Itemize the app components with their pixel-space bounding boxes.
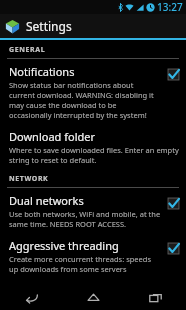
staticText: Show status bar notifications about curr… [9, 80, 161, 120]
button[interactable]: Toggle Dual networks [167, 197, 180, 210]
button[interactable]: Recents [124, 284, 186, 310]
staticText: Settings [26, 18, 72, 34]
staticText: Notifications [9, 64, 75, 79]
button[interactable]: Toggle Notifications [167, 68, 180, 81]
staticText: 13:27 [157, 0, 183, 14]
button[interactable]: Aggressive threading [0, 233, 186, 278]
button[interactable]: Toggle Aggressive threading [167, 242, 180, 255]
button[interactable]: Download folder [0, 124, 186, 169]
staticText: Aggressive threading [9, 238, 119, 253]
staticText: Dual networks [9, 193, 84, 208]
staticText: GENERAL [9, 45, 46, 55]
staticText: Where to save downloaded files. Enter an… [9, 145, 180, 165]
button[interactable]: Back [0, 284, 62, 310]
button[interactable]: Settings [0, 14, 186, 38]
staticText: Use both networks, WiFi and mobile, at t… [9, 209, 161, 229]
staticText: NETWORK [9, 174, 49, 184]
button[interactable]: Dual networks [0, 188, 186, 233]
button[interactable]: Home [62, 284, 124, 310]
button[interactable]: Notifications [0, 59, 186, 124]
staticText: Create more concurrent threads: speeds u… [9, 254, 161, 274]
staticText: Download folder [9, 129, 95, 144]
